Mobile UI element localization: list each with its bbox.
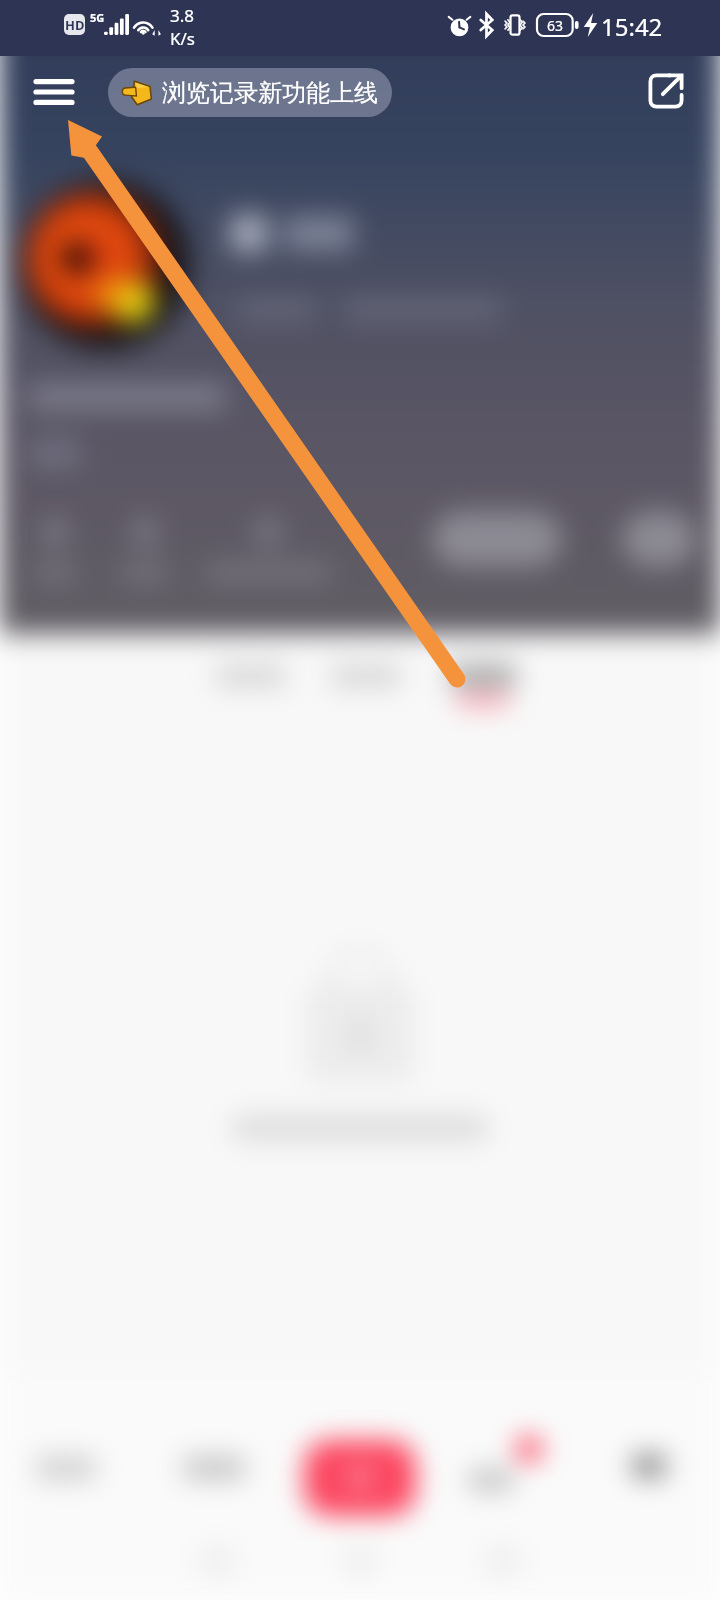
button[interactable]: Avatar bbox=[20, 180, 190, 350]
button[interactable] bbox=[205, 519, 331, 583]
staticText: 15:42 bbox=[601, 10, 663, 43]
staticText: K/s bbox=[170, 27, 195, 50]
button[interactable]: Share bbox=[637, 62, 695, 120]
button[interactable] bbox=[632, 1454, 666, 1478]
button[interactable] bbox=[331, 664, 401, 695]
staticText: HD bbox=[65, 16, 85, 34]
button[interactable] bbox=[450, 664, 516, 706]
button[interactable] bbox=[230, 214, 354, 252]
button[interactable] bbox=[216, 664, 286, 695]
staticText: 3.8 bbox=[170, 4, 195, 27]
staticText: 浏览记录新功能上线 bbox=[162, 78, 378, 108]
button[interactable] bbox=[622, 511, 696, 567]
button[interactable] bbox=[432, 511, 562, 567]
button[interactable]: 浏览记录新功能上线 bbox=[108, 68, 392, 117]
button[interactable] bbox=[36, 1456, 96, 1480]
button[interactable]: Create post bbox=[304, 1440, 416, 1516]
button[interactable] bbox=[466, 1440, 552, 1496]
button[interactable] bbox=[30, 438, 80, 468]
staticText: 63 bbox=[547, 16, 564, 35]
button[interactable] bbox=[183, 1456, 245, 1480]
staticText: 5G bbox=[90, 10, 105, 25]
button[interactable]: Menu bbox=[12, 62, 96, 122]
